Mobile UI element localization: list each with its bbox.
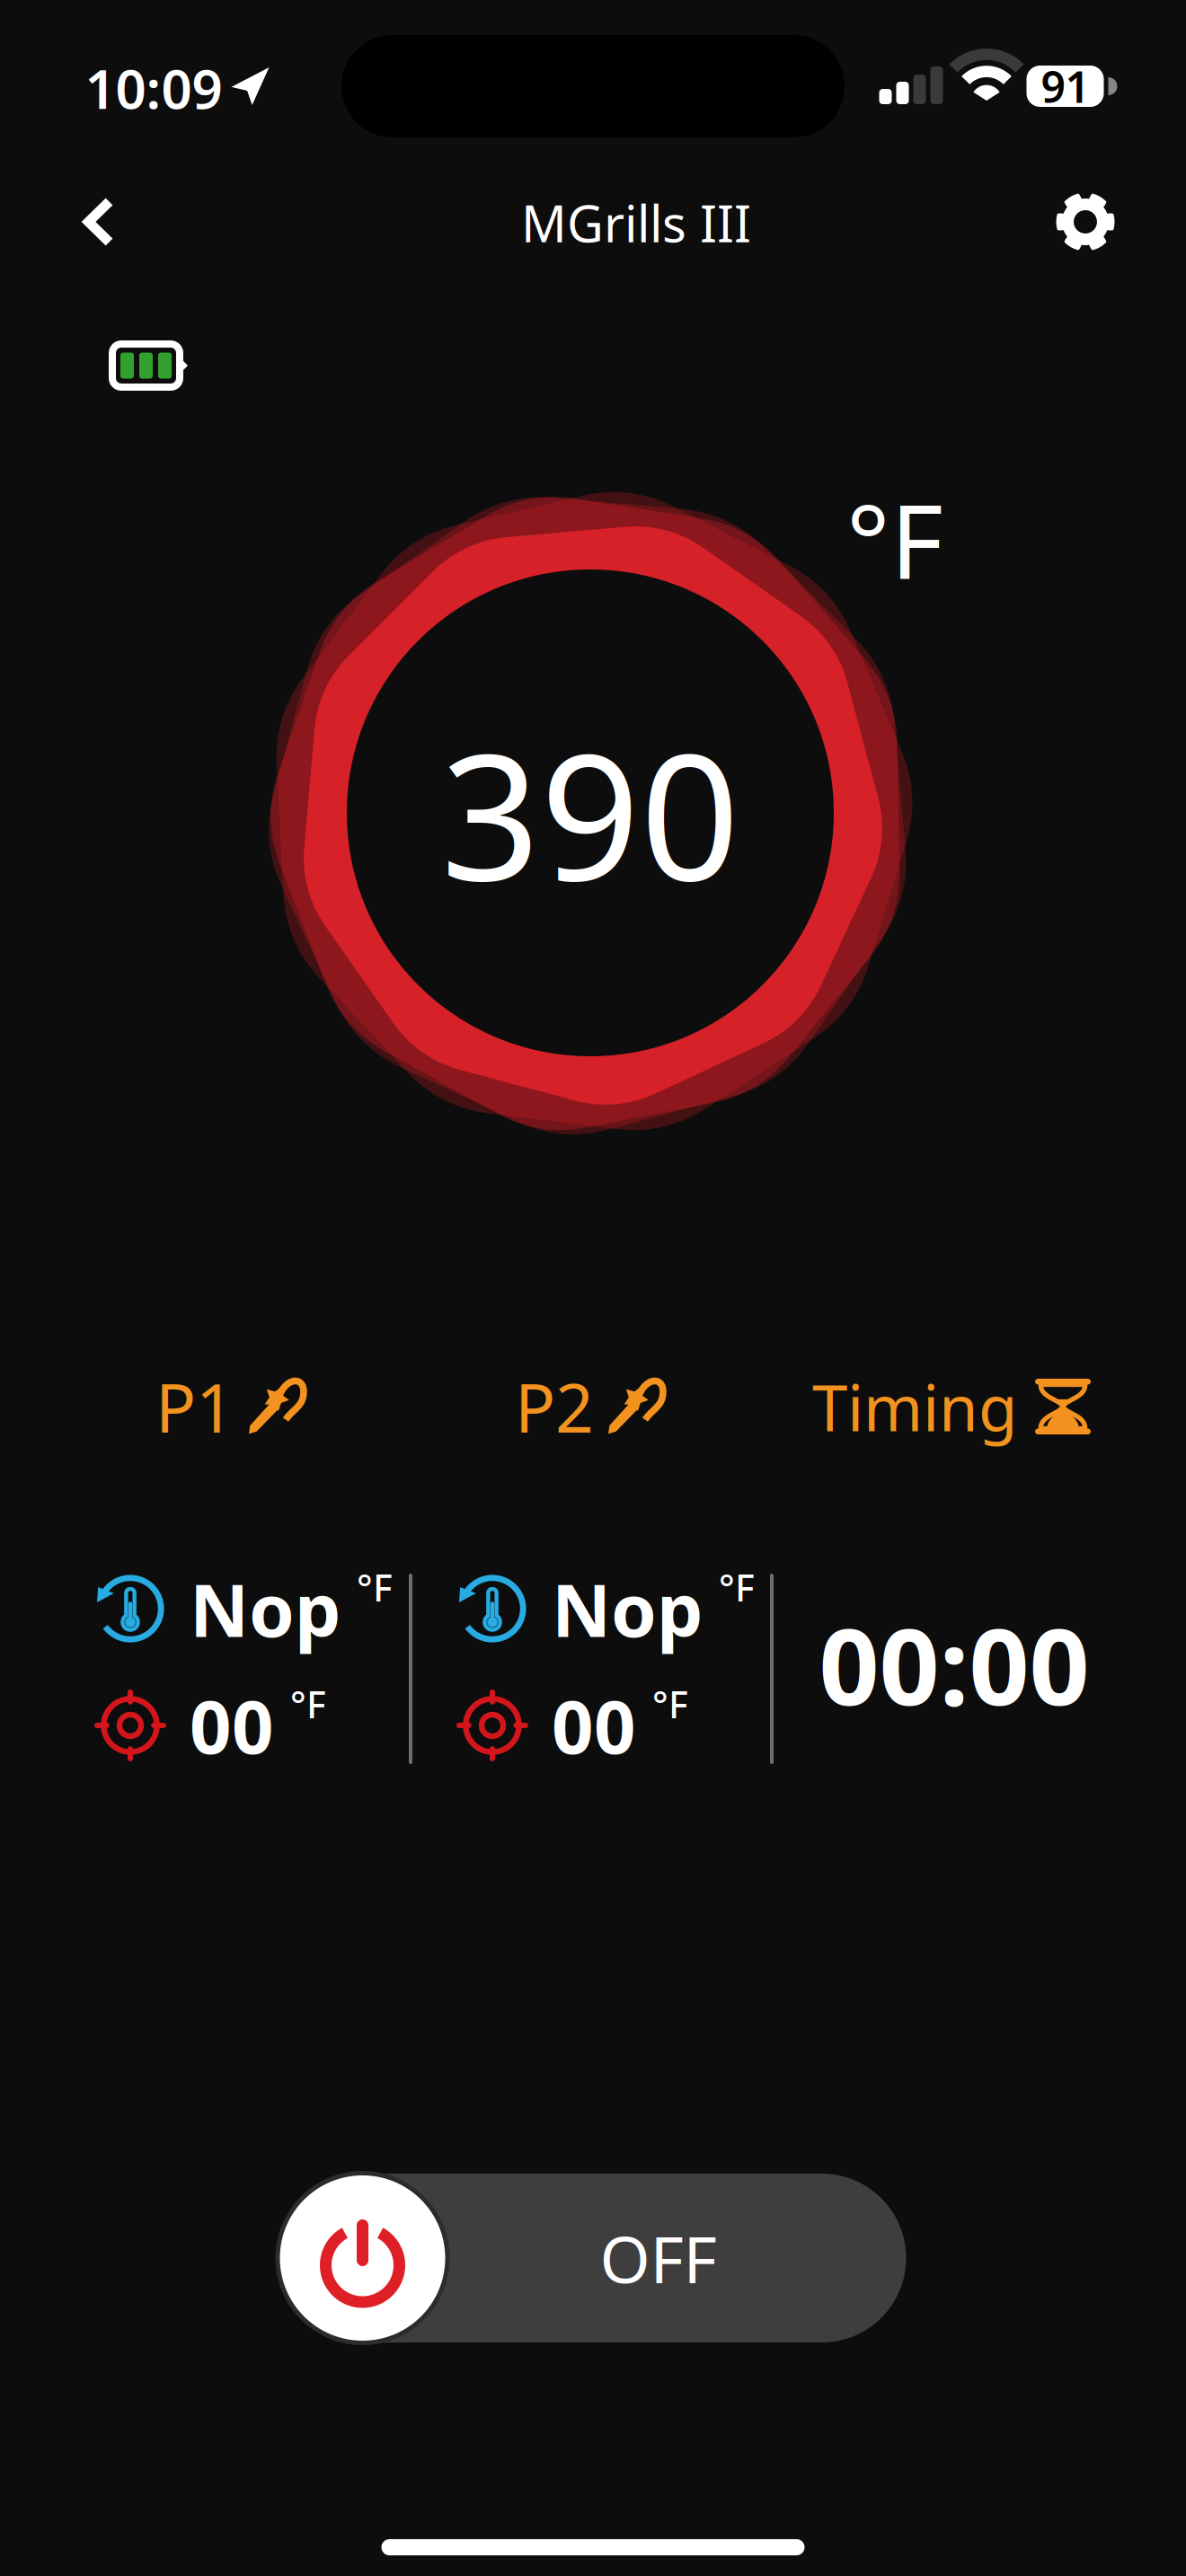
staticText: °F xyxy=(846,471,943,606)
staticText: °F xyxy=(357,1562,393,1612)
staticText: 00 xyxy=(190,1677,274,1774)
staticText: P2 xyxy=(515,1362,594,1451)
button[interactable]: Back xyxy=(45,168,153,276)
staticText: °F xyxy=(290,1679,326,1729)
staticText: 00 xyxy=(552,1677,636,1774)
staticText: OFF xyxy=(600,2215,717,2301)
staticText: Nop xyxy=(190,1560,341,1657)
staticText: P1 xyxy=(155,1362,235,1451)
button[interactable]: Settings xyxy=(1031,168,1139,276)
staticText: 91 xyxy=(1041,58,1089,115)
staticText: 00:00 xyxy=(819,1594,1089,1734)
staticText: °F xyxy=(719,1562,755,1612)
staticText: MGrills III xyxy=(521,189,751,256)
staticText: °F xyxy=(652,1679,688,1729)
button[interactable]: OFF xyxy=(280,2174,906,2342)
staticText: Timing xyxy=(812,1364,1017,1449)
staticText: 10:09 xyxy=(85,52,222,124)
staticText: 390 xyxy=(441,698,740,928)
staticText: Nop xyxy=(552,1560,703,1657)
